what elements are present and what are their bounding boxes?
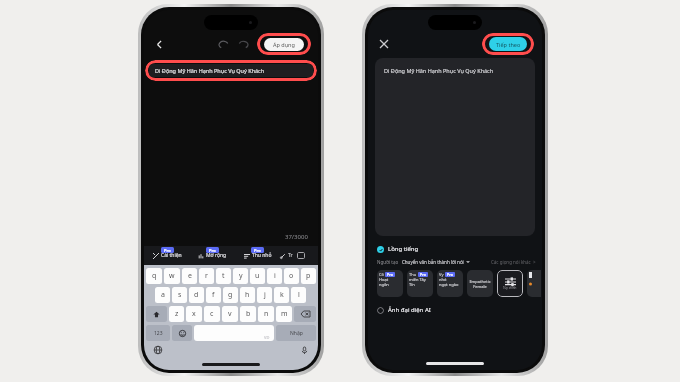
button[interactable]: t [216,268,231,284]
button[interactable] [146,306,167,322]
staticText: c [210,309,214,319]
button[interactable]: Cải thiện [144,246,190,265]
staticText: e [188,271,192,281]
staticText: Tiếp theo [496,41,521,48]
staticText: VD [264,335,270,340]
staticText: w [169,271,175,281]
button[interactable]: o [284,268,299,284]
staticText: Chuyển văn bản thành lời nói [402,259,464,265]
staticText: Tr [288,252,293,259]
button[interactable]: Di Động Mỹ Hân Hạnh Phục Vụ Quý Khách [149,64,313,77]
button[interactable]: Back [151,36,167,52]
button[interactable]: b [240,306,256,322]
staticText: Lồng tiếng [388,245,419,253]
button[interactable]: w [164,268,180,284]
button[interactable]: x [186,306,202,322]
staticText: Hoạt ngôn [379,277,389,287]
staticText: y [239,271,243,281]
button[interactable]: Các giọng nói khác [491,259,536,265]
button[interactable]: z [169,306,184,322]
staticText: k [280,290,284,300]
button[interactable]: d [189,287,204,303]
button[interactable]: m [276,306,292,322]
staticText: b [246,309,251,319]
button[interactable]: VD [194,325,274,341]
button[interactable]: j [257,287,272,303]
staticText: Cải thiện [161,252,182,259]
staticText: n [264,309,269,319]
staticText: miền Tây Tín [409,277,426,287]
button[interactable]: Áp dụng [264,38,304,51]
staticText: Di Động Mỹ Hân Hạnh Phục Vụ Quý Khách [384,67,494,74]
button[interactable]: Tr [280,252,318,259]
staticText: u [255,271,260,281]
staticText: p [306,271,311,281]
button[interactable]: Cô [377,270,403,297]
staticText: Ảnh đại diện AI [388,306,431,314]
staticText: Thu nhỏ [252,252,272,259]
button[interactable]: Redo [235,36,251,52]
button[interactable]: Lồng tiếng [377,245,419,253]
button[interactable]: Tiếp theo [489,37,527,51]
button[interactable]: 123 [146,325,170,341]
button[interactable]: y [233,268,248,284]
button[interactable]: Di Động Mỹ Hân Hạnh Phục Vụ Quý Khách [375,58,535,236]
button[interactable]: Empathetic Female [467,270,493,297]
staticText: Vy [439,272,444,277]
button[interactable] [172,325,192,341]
button[interactable]: n [258,306,274,322]
button[interactable]: Thu [407,270,433,297]
staticText: Cô [379,272,384,277]
staticText: s [178,290,182,300]
button[interactable]: Thu nhỏ [235,246,280,265]
staticText: 37/3000 [285,233,308,241]
button[interactable]: Vy [437,270,463,297]
staticText: Pro [420,272,426,277]
staticText: j [264,290,266,300]
button[interactable]: Undo [215,36,231,52]
button[interactable]: Change keyboard [152,344,164,356]
staticText: a [161,290,165,300]
button[interactable]: u [250,268,265,284]
staticText: z [175,309,179,319]
staticText: Pro [387,272,393,277]
button[interactable]: q [146,268,162,284]
button[interactable]: s [172,287,187,303]
button[interactable]: Mở rộng [190,246,235,265]
button[interactable] [294,306,316,322]
button[interactable]: Chuyển văn bản thành lời nói [402,259,470,265]
staticText: l [298,290,300,300]
button[interactable]: Nhập [276,325,316,341]
staticText: > [533,259,536,265]
button[interactable]: f [206,287,221,303]
staticText: Pro [447,272,453,277]
button[interactable]: p [301,268,316,284]
staticText: g [228,290,233,300]
button[interactable]: l [291,287,306,303]
button[interactable] [527,270,541,297]
button[interactable]: r [199,268,214,284]
button[interactable]: h [240,287,255,303]
button[interactable]: Ảnh đại diện AI [377,306,431,314]
button[interactable]: e [182,268,197,284]
staticText: Pro [254,248,261,253]
button[interactable]: v [222,306,238,322]
staticText: x [192,309,196,319]
button[interactable]: Close [376,36,392,52]
button[interactable]: g [223,287,238,303]
staticText: Nhập [290,330,303,337]
staticText: nhỏ ngọt ngào [439,277,459,287]
staticText: m [281,309,288,319]
button[interactable]: i [267,268,282,284]
staticText: Người tạo [377,259,399,265]
button[interactable]: c [204,306,220,322]
staticText: Mở rộng [206,252,227,259]
staticText: d [194,290,199,300]
button[interactable]: a [155,287,170,303]
button[interactable]: k [274,287,289,303]
button[interactable]: Voice settings [497,270,523,297]
staticText: Empathetic Female [469,279,491,289]
staticText: Thu [409,272,417,277]
button[interactable]: Dictation [298,344,310,356]
staticText: Di Động Mỹ Hân Hạnh Phục Vụ Quý Khách [155,67,265,74]
